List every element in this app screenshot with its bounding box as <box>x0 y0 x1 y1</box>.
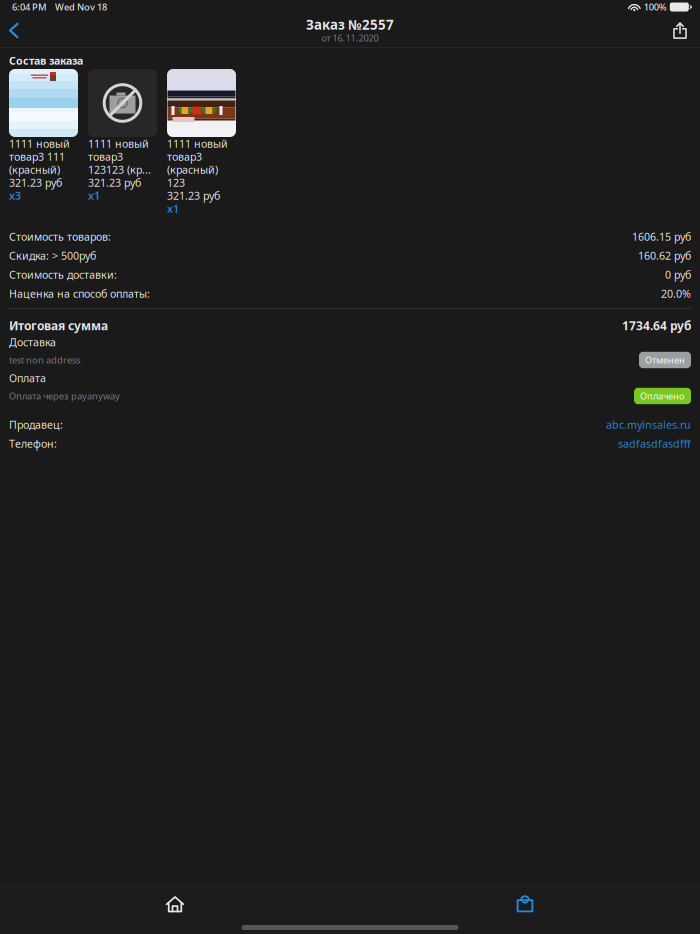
staticText: Телефон: <box>9 436 57 451</box>
staticText: 321.23 руб <box>88 175 141 190</box>
staticText: Оплата через payanyway <box>9 390 120 402</box>
staticText: Оплата <box>9 371 46 385</box>
button[interactable]: Home <box>145 887 205 921</box>
button[interactable]: Orders <box>495 887 555 921</box>
staticText: abc.myinsales.ru <box>606 417 691 432</box>
staticText: Итоговая сумма <box>9 317 108 333</box>
staticText: 20.0% <box>661 286 691 301</box>
staticText: 160.62 руб <box>638 248 691 263</box>
staticText: 1111 новый <box>9 136 70 151</box>
staticText: товар3 111 <box>9 149 65 164</box>
button[interactable]: Back <box>1 14 27 47</box>
staticText: x1 <box>88 188 100 203</box>
staticText: 6:04 PM <box>12 1 47 13</box>
staticText: от 16.11.2020 <box>321 32 378 44</box>
staticText: Состав заказа <box>9 53 83 68</box>
staticText: 100% <box>644 1 667 13</box>
staticText: x1 <box>167 201 179 216</box>
staticText: (красный) <box>167 162 218 177</box>
button[interactable]: Share <box>665 14 695 47</box>
staticText: 0 руб <box>665 267 691 282</box>
staticText: 321.23 руб <box>167 188 220 203</box>
staticText: Наценка на способ оплаты: <box>9 286 150 301</box>
staticText: Стоимость доставки: <box>9 267 117 282</box>
button[interactable]: abc.myinsales.ru <box>606 417 691 432</box>
staticText: Wed Nov 18 <box>55 1 107 13</box>
button[interactable]: sadfasdfasdfff <box>618 436 691 451</box>
staticText: Заказ №2557 <box>306 16 394 33</box>
staticText: 1111 новый <box>88 136 149 151</box>
staticText: Продавец: <box>9 417 63 432</box>
staticText: 1606.15 руб <box>632 229 691 244</box>
staticText: 1111 новый <box>167 136 228 151</box>
staticText: 123 <box>167 175 185 190</box>
staticText: sadfasdfasdfff <box>618 436 691 451</box>
staticText: x3 <box>9 188 21 203</box>
staticText: Оплачено <box>640 390 685 402</box>
staticText: Стоимость товаров: <box>9 229 111 244</box>
staticText: Скидка: > 500руб <box>9 248 96 263</box>
staticText: товар3 <box>88 149 123 164</box>
staticText: 123123 (кр... <box>88 162 151 177</box>
staticText: test non address <box>9 354 80 366</box>
staticText: 321.23 руб <box>9 175 62 190</box>
staticText: Доставка <box>9 335 56 349</box>
staticText: (красный) <box>9 162 60 177</box>
staticText: 1734.64 руб <box>622 317 691 333</box>
staticText: Отменен <box>645 354 685 366</box>
staticText: товар3 <box>167 149 202 164</box>
